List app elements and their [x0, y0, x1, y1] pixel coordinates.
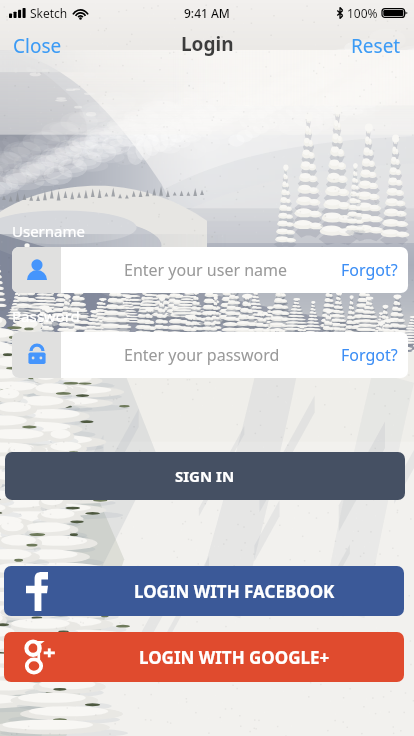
button[interactable]: Password	[12, 332, 408, 378]
button[interactable]: Reset	[338, 26, 414, 62]
staticText: Enter your password	[124, 344, 335, 366]
staticText: Enter your user name	[124, 259, 335, 281]
staticText: 9:41 AM	[184, 5, 230, 21]
staticText: Reset	[351, 33, 401, 55]
button[interactable]: User	[12, 247, 408, 293]
other: Password	[12, 332, 61, 378]
staticText: Password	[12, 306, 80, 326]
button[interactable]: LOGIN WITH FACEBOOK	[4, 566, 404, 616]
staticText: LOGIN WITH FACEBOOK	[134, 580, 335, 603]
other: User	[12, 247, 61, 293]
staticText: LOGIN WITH GOOGLE+	[139, 646, 330, 669]
button[interactable]: SIGN IN	[5, 452, 405, 500]
button[interactable]: LOGIN WITH GOOGLE+	[4, 632, 404, 682]
staticText: SIGN IN	[175, 466, 235, 486]
button[interactable]: Close	[0, 26, 75, 62]
staticText: Forgot?	[341, 344, 398, 366]
staticText: Username	[12, 221, 85, 241]
staticText: Sketch	[30, 5, 68, 21]
staticText: Close	[13, 33, 62, 55]
button[interactable]: Forgot?	[335, 247, 408, 293]
staticText: Login	[181, 31, 234, 57]
staticText: Forgot?	[341, 259, 398, 281]
staticText: 100%	[347, 5, 378, 21]
button[interactable]: Forgot?	[335, 332, 408, 378]
